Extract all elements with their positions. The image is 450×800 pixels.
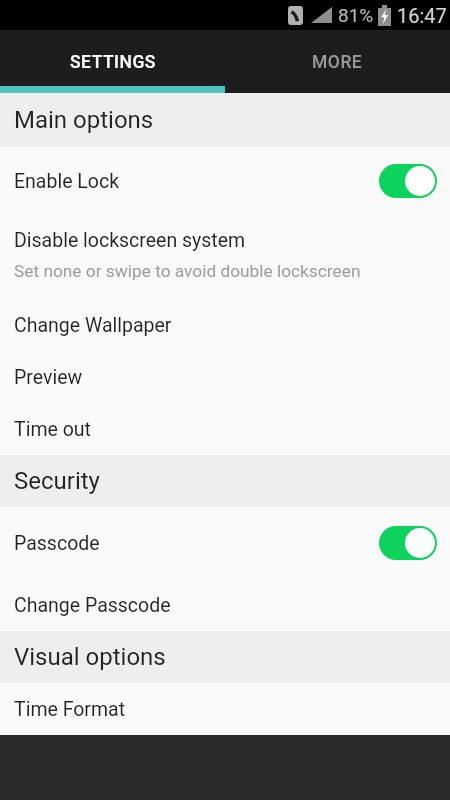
- staticText: Main options: [14, 106, 154, 134]
- button[interactable]: Preview: [0, 351, 450, 403]
- staticText: Security: [14, 467, 100, 495]
- staticText: MORE: [312, 52, 363, 73]
- button[interactable]: Time out: [0, 403, 450, 455]
- staticText: SETTINGS: [70, 52, 156, 73]
- staticText: Preview: [14, 366, 83, 389]
- staticText: 81%: [338, 4, 374, 26]
- staticText: Visual options: [14, 643, 166, 671]
- button[interactable]: MORE: [225, 39, 450, 86]
- button[interactable]: Enable Lock: [0, 147, 450, 215]
- staticText: Passcode: [14, 532, 100, 555]
- staticText: 16:47: [397, 4, 447, 27]
- button[interactable]: Change Wallpaper: [0, 299, 450, 351]
- staticText: Set none or swipe to avoid double locksc…: [14, 261, 361, 281]
- button[interactable]: Disable lockscreen system: [0, 215, 450, 299]
- staticText: Change Passcode: [14, 594, 171, 617]
- button[interactable]: Change Passcode: [0, 579, 450, 631]
- staticText: Time out: [14, 418, 91, 441]
- staticText: Change Wallpaper: [14, 314, 172, 337]
- staticText: Enable Lock: [14, 170, 120, 193]
- button[interactable]: SETTINGS: [0, 39, 225, 86]
- staticText: Disable lockscreen system: [14, 229, 246, 252]
- button[interactable]: Time Format: [0, 683, 450, 735]
- staticText: Time Format: [14, 698, 126, 721]
- button[interactable]: Passcode: [0, 507, 450, 579]
